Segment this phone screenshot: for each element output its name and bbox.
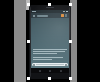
- button[interactable]: Recents: [59, 69, 63, 73]
- button[interactable]: Home: [48, 69, 52, 73]
- button[interactable]: Back: [31, 13, 69, 18]
- button[interactable]: Back: [38, 69, 42, 73]
- button[interactable]: Back: [29, 5, 71, 79]
- other: More options: [61, 14, 64, 17]
- button[interactable]: Emoji: [32, 63, 68, 66]
